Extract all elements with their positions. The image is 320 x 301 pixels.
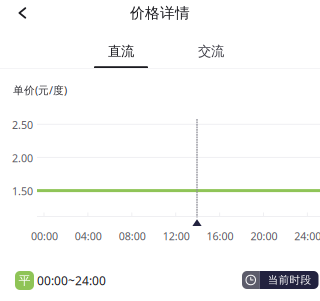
staticText: 价格详情 [130, 4, 190, 22]
staticText: 20:00 [250, 229, 277, 243]
staticText: 24:00 [294, 229, 320, 243]
staticText: 12:00 [163, 229, 190, 243]
staticText: 04:00 [75, 229, 102, 243]
button[interactable]: 当前时段 [242, 271, 318, 289]
staticText: 平 [18, 273, 30, 288]
staticText: 00:00~24:00 [37, 272, 106, 288]
staticText: 1.50 [12, 184, 33, 198]
staticText: 当前时段 [267, 273, 311, 286]
staticText: 00:00 [31, 229, 58, 243]
staticText: 16:00 [207, 229, 234, 243]
button[interactable]: 直流 [76, 43, 166, 69]
staticText: 单价(元/度) [13, 83, 67, 97]
staticText: 直流 [108, 43, 134, 59]
staticText: 08:00 [119, 229, 146, 243]
staticText: 2.50 [12, 118, 33, 132]
staticText: 交流 [198, 43, 224, 59]
staticText: 2.00 [12, 151, 33, 165]
button[interactable]: 交流 [166, 43, 256, 69]
button[interactable]: 返回 [0, 0, 45, 26]
